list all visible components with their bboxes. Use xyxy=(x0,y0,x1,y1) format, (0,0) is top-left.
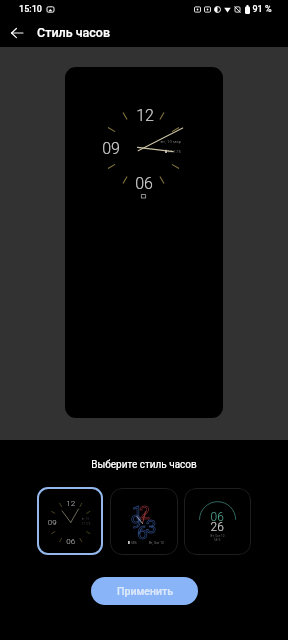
button[interactable] xyxy=(110,488,178,555)
button[interactable]: Back xyxy=(0,18,34,47)
staticText: 91 % xyxy=(252,4,272,15)
staticText: 12 xyxy=(136,106,154,125)
button[interactable]: Применить xyxy=(91,577,198,605)
staticText: 15:10 xyxy=(19,4,42,15)
button[interactable] xyxy=(184,488,251,555)
staticText: Применить xyxy=(117,585,173,597)
staticText: 09 xyxy=(102,139,120,158)
staticText: Стиль часов xyxy=(37,25,110,40)
staticText: Выберите стиль часов xyxy=(91,459,197,471)
staticText: 06 xyxy=(135,174,153,193)
button[interactable] xyxy=(37,487,103,555)
